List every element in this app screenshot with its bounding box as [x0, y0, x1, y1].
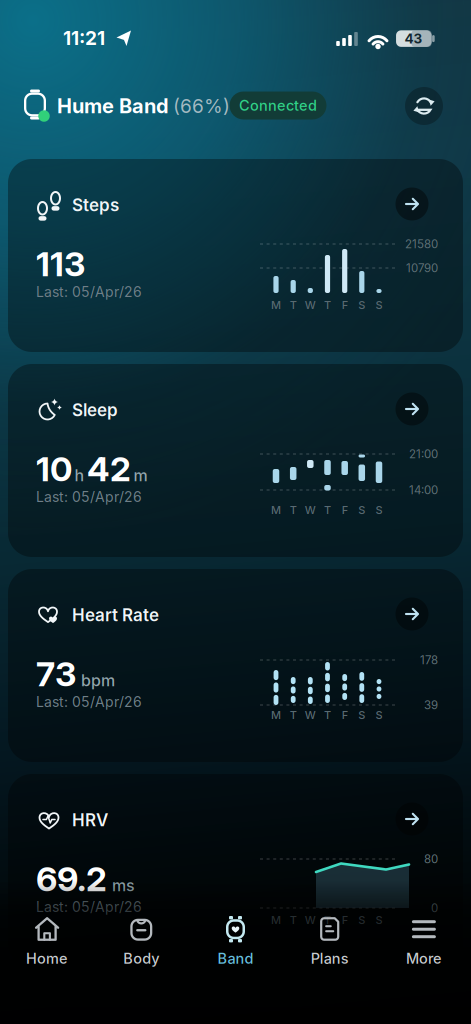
staticText: 14:00	[409, 483, 438, 497]
staticText: 10790	[406, 261, 438, 275]
staticText: T	[324, 708, 331, 722]
button[interactable]: Open details	[395, 392, 428, 425]
button[interactable]: More	[379, 910, 469, 972]
staticText: 21:00	[409, 447, 438, 461]
staticText: F	[342, 708, 348, 722]
staticText: 42	[87, 448, 131, 489]
staticText: 11:21	[63, 26, 105, 49]
staticText: Band	[217, 950, 253, 967]
button[interactable]: Body	[96, 910, 186, 972]
staticText: Home	[26, 950, 68, 967]
staticText: T	[290, 708, 297, 722]
staticText: (66%)	[173, 94, 230, 117]
staticText: Last: 05/Apr/26	[36, 488, 142, 505]
staticText: M	[271, 298, 281, 312]
button[interactable]: Open details	[395, 187, 428, 220]
staticText: Body	[123, 950, 159, 967]
staticText: S	[358, 503, 365, 517]
staticText: 73	[36, 653, 76, 694]
staticText: W	[305, 503, 316, 517]
staticText: S	[358, 298, 365, 312]
staticText: W	[305, 708, 316, 722]
staticText: S	[358, 913, 365, 927]
staticText: Connected	[239, 97, 317, 114]
staticText: Sleep	[72, 400, 118, 420]
staticText: S	[375, 298, 382, 312]
staticText: F	[342, 298, 348, 312]
staticText: T	[290, 503, 297, 517]
staticText: m	[133, 466, 147, 485]
staticText: T	[324, 503, 331, 517]
staticText: 80	[424, 852, 438, 866]
staticText: Last: 05/Apr/26	[36, 693, 142, 710]
staticText: T	[324, 913, 331, 927]
staticText: T	[290, 298, 297, 312]
button[interactable]: Home	[2, 910, 92, 972]
staticText: T	[290, 913, 297, 927]
staticText: h	[74, 466, 84, 485]
staticText: 178	[420, 653, 438, 667]
staticText: F	[342, 503, 348, 517]
staticText: Last: 05/Apr/26	[36, 283, 142, 300]
staticText: Last: 05/Apr/26	[36, 898, 142, 915]
staticText: ms	[112, 876, 135, 895]
staticText: 21580	[405, 237, 438, 251]
staticText: 43	[404, 30, 422, 47]
staticText: Hume Band	[57, 94, 169, 118]
staticText: M	[271, 913, 281, 927]
staticText: 0	[431, 901, 438, 915]
staticText: S	[358, 708, 365, 722]
staticText: W	[305, 298, 316, 312]
button[interactable]: Open details	[395, 597, 428, 630]
staticText: M	[271, 503, 281, 517]
staticText: HRV	[72, 810, 108, 830]
button[interactable]: Band	[190, 910, 280, 972]
staticText: 10	[36, 448, 72, 489]
staticText: bpm	[81, 671, 115, 690]
staticText: Plans	[311, 950, 349, 967]
staticText: More	[406, 950, 442, 967]
button[interactable]: Open details	[395, 802, 428, 835]
staticText: 39	[424, 698, 438, 712]
staticText: S	[375, 708, 382, 722]
button[interactable]: Refresh	[405, 87, 443, 125]
staticText: S	[375, 503, 382, 517]
button[interactable]: Plans	[285, 910, 375, 972]
staticText: 113	[36, 243, 85, 284]
staticText: F	[342, 913, 348, 927]
staticText: S	[375, 913, 382, 927]
staticText: Steps	[72, 195, 119, 215]
staticText: T	[324, 298, 331, 312]
staticText: W	[305, 913, 316, 927]
staticText: 69.2	[36, 858, 107, 899]
staticText: M	[271, 708, 281, 722]
staticText: Heart Rate	[72, 605, 159, 625]
